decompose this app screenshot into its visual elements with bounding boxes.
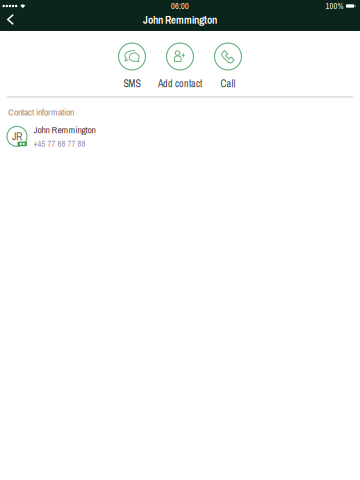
button[interactable]: Back xyxy=(0,12,21,31)
staticText: JR xyxy=(12,129,22,144)
staticText: Call xyxy=(220,77,235,90)
staticText: John Remmington xyxy=(143,13,217,27)
button[interactable]: Call xyxy=(204,43,252,90)
button[interactable]: JR xyxy=(0,123,360,149)
staticText: 06:00 xyxy=(171,0,189,11)
staticText: 100% xyxy=(325,0,343,11)
staticText: John Remmington xyxy=(33,123,95,136)
staticText: SMS xyxy=(123,77,140,90)
staticText: Contact information xyxy=(8,105,74,118)
button[interactable]: Add contact xyxy=(156,43,204,90)
button[interactable]: SMS xyxy=(108,43,156,90)
staticText: Add contact xyxy=(158,77,202,90)
staticText: +45 77 88 77 88 xyxy=(33,138,85,149)
